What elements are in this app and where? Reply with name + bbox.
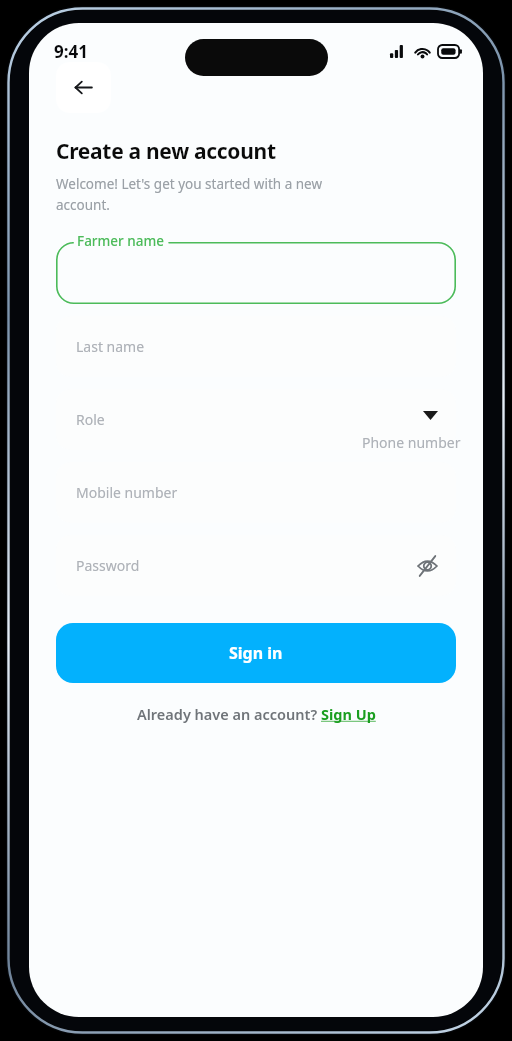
button[interactable]: Back (56, 62, 111, 113)
staticText: Sign in (229, 642, 283, 664)
button[interactable]: Sign in (56, 623, 456, 683)
button[interactable]: Password (56, 535, 456, 596)
staticText: Phone number (362, 433, 461, 452)
staticText: Create a new account (56, 137, 276, 166)
staticText: Last name (76, 337, 145, 356)
button[interactable]: Mobile number (56, 462, 456, 523)
staticText: Farmer name (77, 232, 165, 250)
button[interactable]: Sign Up (321, 704, 376, 724)
button[interactable] (56, 242, 456, 304)
button[interactable]: Role (56, 389, 456, 450)
staticText: Role (76, 410, 105, 429)
staticText: 9:41 (54, 40, 88, 63)
staticText: Welcome! Let's get you started with a ne… (56, 175, 323, 214)
button[interactable]: Show password (412, 551, 442, 581)
button[interactable]: Last name (56, 316, 456, 377)
staticText: Password (76, 556, 140, 575)
staticText: Already have an account? (137, 704, 321, 724)
staticText: Mobile number (76, 483, 178, 502)
staticText: Sign Up (321, 704, 376, 724)
